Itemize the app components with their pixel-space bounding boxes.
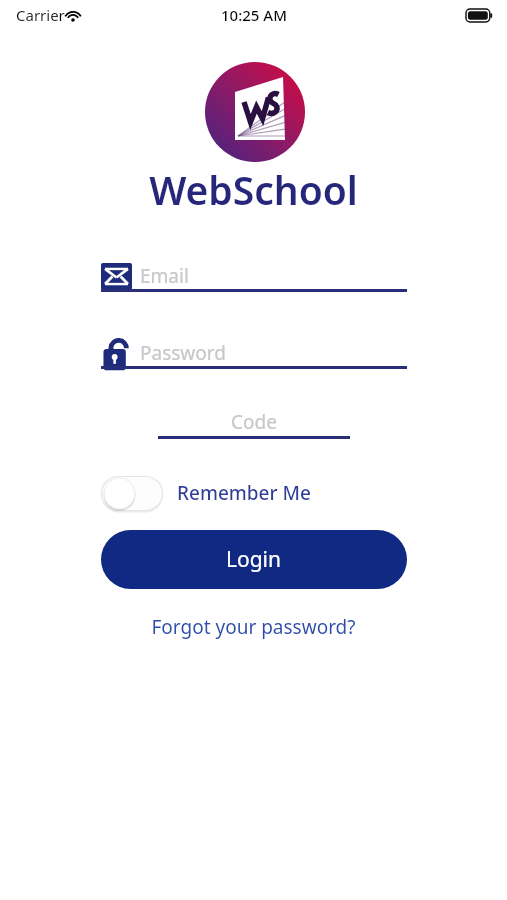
staticText: Email [140, 263, 189, 289]
button[interactable]: Code [158, 406, 350, 438]
staticText: Remember Me [177, 480, 311, 506]
staticText: Password [140, 340, 226, 366]
staticText: Code [231, 409, 277, 435]
staticText: Carrier [16, 5, 65, 25]
button[interactable]: Email [101, 258, 407, 294]
button[interactable]: Login [101, 530, 407, 589]
button[interactable]: Remember Me [101, 474, 311, 512]
staticText: WebSchool [0, 163, 507, 216]
button[interactable]: Password [101, 333, 407, 371]
button[interactable]: Forgot your password? [0, 610, 507, 644]
staticText: Forgot your password? [151, 614, 356, 640]
staticText: Login [226, 545, 282, 574]
staticText: 10:25 AM [221, 5, 287, 25]
